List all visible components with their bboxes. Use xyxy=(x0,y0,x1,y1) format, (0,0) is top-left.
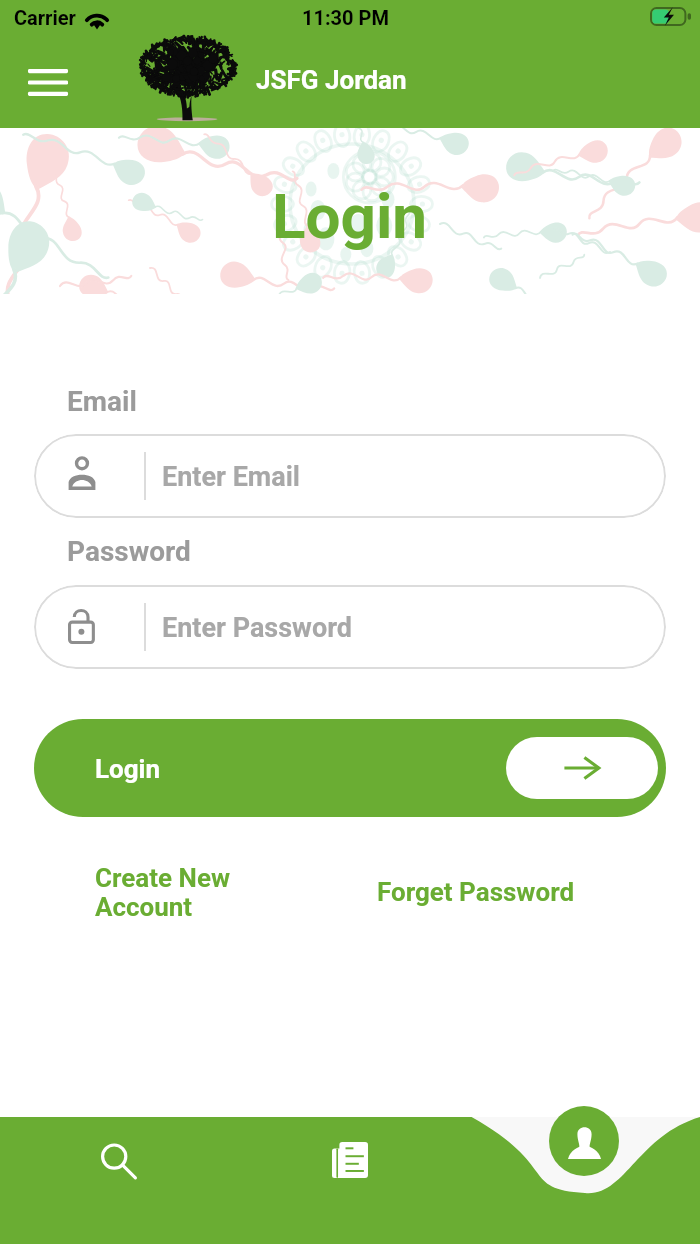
other: Sign in xyxy=(506,737,658,799)
staticText: Email xyxy=(67,385,137,418)
staticText: Forget Password xyxy=(377,877,575,907)
staticText: Login xyxy=(272,180,428,253)
staticText: Login xyxy=(95,754,161,784)
button[interactable]: Create New Account xyxy=(95,863,295,927)
staticText: 11:30 PM xyxy=(302,6,389,29)
staticText: Password xyxy=(67,535,191,568)
button[interactable]: Enter Email xyxy=(34,434,666,518)
staticText: Carrier xyxy=(14,6,76,29)
staticText: Create New Account xyxy=(95,863,231,923)
staticText: JSFG Jordan xyxy=(256,65,407,95)
staticText: Enter Password xyxy=(162,612,352,644)
button[interactable]: Menu xyxy=(20,54,76,110)
staticText: Enter Email xyxy=(162,461,300,493)
button[interactable]: Profile xyxy=(549,1106,619,1176)
button[interactable]: Enter Password xyxy=(34,585,666,669)
button[interactable]: News xyxy=(310,1120,390,1200)
button[interactable]: Forget Password xyxy=(377,877,575,911)
button[interactable]: Login xyxy=(34,719,666,817)
button[interactable]: Search xyxy=(79,1122,159,1202)
